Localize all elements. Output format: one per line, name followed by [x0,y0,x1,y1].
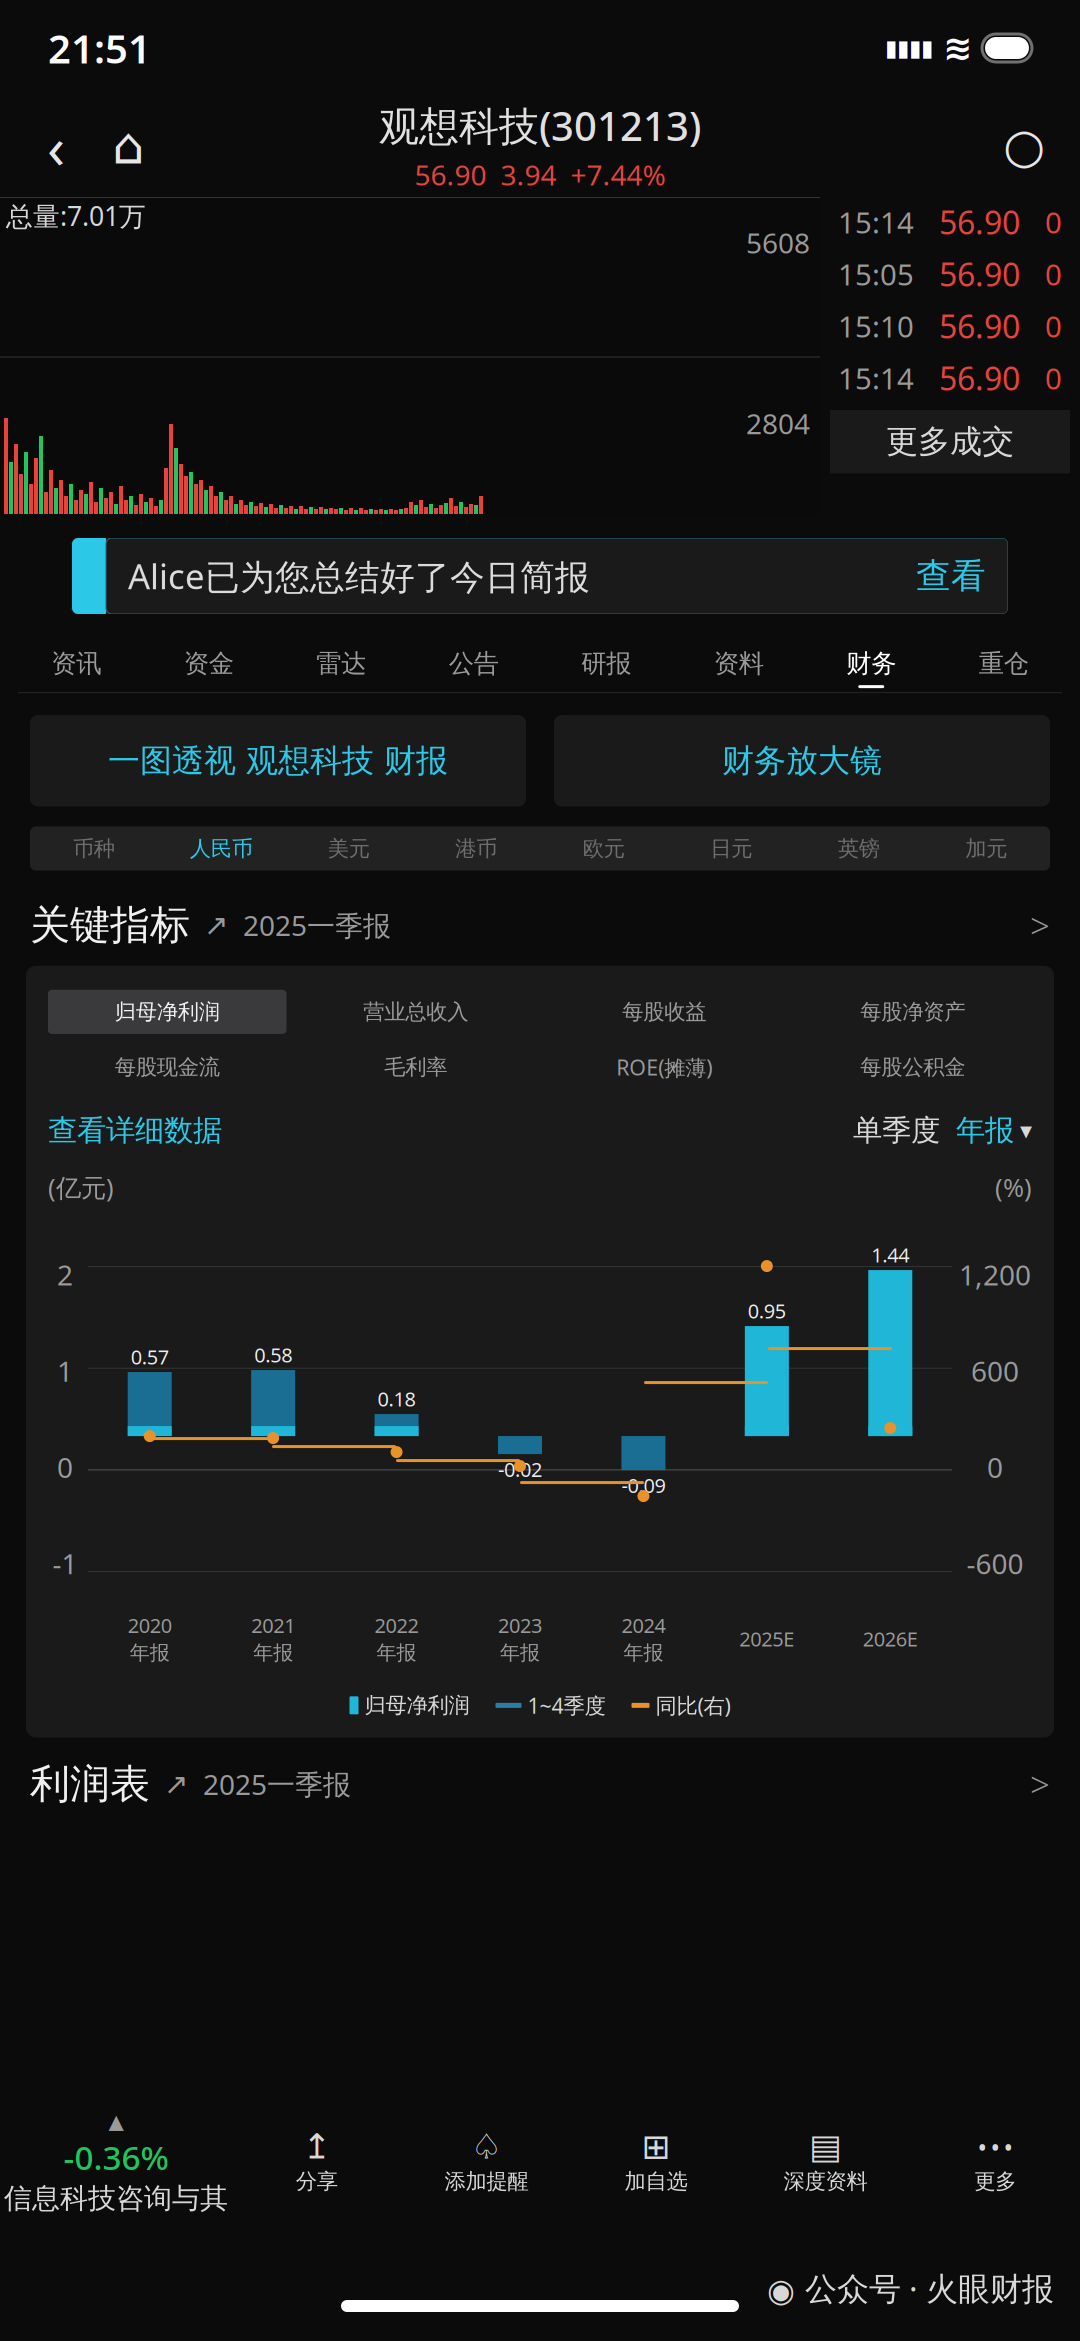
staticText: 0.57 [131,1343,169,1370]
staticText: 日元 [710,835,752,862]
staticText: 加自选 [624,2168,687,2195]
staticText: ⊞ [641,2127,670,2166]
staticText: 56.90 [939,357,1020,399]
staticText: 添加提醒 [444,2168,528,2195]
staticText: 15:10 [838,306,914,345]
button[interactable]: 更多成交 [830,410,1070,473]
button[interactable]: 单季度 [853,1104,940,1156]
staticText: 公告 [449,648,499,679]
staticText: 查看 [916,555,986,597]
staticText: (%) [995,1170,1032,1204]
staticText: 单季度 [853,1112,940,1148]
button[interactable]: 每股公积金 [793,1045,1032,1089]
staticText: ▮▮▮▮ [885,35,933,61]
button[interactable]: 财务 [805,644,937,692]
staticText: 年报 [623,1641,663,1665]
staticText: 欧元 [583,835,625,862]
button[interactable]: 每股净资产 [793,990,1032,1034]
staticText: 信息科技咨询与其 [4,2181,228,2216]
staticText: 15:14 [838,358,914,397]
staticText: 0 [57,1449,73,1486]
staticText: 查看详细数据 [48,1112,222,1148]
staticText: 5608 [746,224,810,261]
button[interactable]: Alice已为您总结好了今日简报 [0,538,1080,614]
button[interactable]: 资讯 [10,644,142,692]
staticText: 1~4季度 [527,1691,605,1719]
staticText: 1 [57,1352,73,1389]
button[interactable]: 一图透视 观想科技 财报 [30,715,526,806]
button[interactable]: ⊞ [571,2123,741,2203]
button[interactable]: ROE(摊薄) [545,1044,783,1090]
button[interactable]: ••• [910,2123,1080,2203]
staticText: ↥ [302,2127,331,2166]
button[interactable]: 每股收益 [545,990,783,1034]
button[interactable]: 日元 [667,826,795,871]
staticText: 利润表 [30,1759,150,1809]
button[interactable]: Home [92,110,164,182]
button[interactable]: 财务放大镜 [554,715,1050,806]
button[interactable]: Back [20,110,92,182]
button[interactable]: 雷达 [275,644,407,692]
staticText: ◉ 公众号 · 火眼财报 [767,2267,1054,2309]
staticText: 600 [971,1352,1019,1389]
button[interactable]: 币种 [30,826,157,871]
staticText: 年报 [377,1641,417,1665]
button[interactable]: 营业总收入 [296,990,535,1034]
staticText: 深度资料 [784,2168,868,2195]
staticText: 1.44 [871,1241,909,1268]
staticText: 同比(右) [655,1691,730,1719]
staticText: 2020 [128,1612,172,1639]
staticText: ♤ [471,2127,502,2166]
button[interactable]: 英镑 [795,826,922,871]
button[interactable]: Search [988,110,1060,182]
button[interactable]: 资金 [142,644,275,692]
staticText: ▾ [1020,1117,1032,1144]
staticText: 0.95 [748,1297,786,1324]
button[interactable]: 查看详细数据 [48,1104,222,1156]
staticText: 2025一季报 [243,907,391,944]
staticText: 0 [1045,254,1062,293]
staticText: 2 [57,1256,73,1293]
staticText: 年报 [956,1112,1014,1148]
button[interactable]: 重仓 [937,644,1070,692]
staticText: 人民币 [190,835,253,862]
staticText: 一图透视 观想科技 财报 [108,741,448,780]
button[interactable]: 美元 [285,826,412,871]
button[interactable]: 人民币 [157,826,285,871]
staticText: > [1030,1761,1050,1807]
staticText: 2026E [863,1625,918,1652]
button[interactable]: 公告 [407,644,540,692]
staticText: ↗ [164,1767,189,1801]
button[interactable]: 利润表 [0,1743,1080,1825]
staticText: 英镑 [838,835,880,862]
staticText: 2023 [498,1612,542,1639]
button[interactable]: 毛利率 [296,1045,535,1089]
staticText: 总量:7.01万 [6,198,146,233]
button[interactable]: ♤ [402,2123,571,2203]
staticText: ▤ [809,2127,842,2166]
staticText: 0.58 [254,1341,292,1368]
button[interactable]: ↥ [232,2123,402,2203]
staticText: (亿元) [48,1170,114,1204]
button[interactable]: 欧元 [540,826,667,871]
staticText: 重仓 [979,648,1029,679]
button[interactable]: 研报 [540,644,672,692]
button[interactable]: ▤ [741,2123,910,2203]
staticText: 2025一季报 [203,1765,351,1803]
staticText: 2022 [375,1612,419,1639]
staticText: 港币 [455,835,497,862]
button[interactable]: 资料 [672,644,805,692]
staticText: 每股现金流 [115,1054,220,1080]
staticText: 财务放大镜 [722,741,882,780]
button[interactable]: 归母净利润 [48,990,286,1034]
button[interactable]: 加元 [922,826,1050,871]
staticText: 加元 [965,835,1007,862]
staticText: 研报 [581,648,631,679]
button[interactable]: 每股现金流 [48,1045,286,1089]
staticText: -0.09 [621,1472,665,1499]
staticText: -1 [52,1545,77,1582]
button[interactable]: 港币 [412,826,540,871]
button[interactable]: 关键指标 [0,885,1080,966]
staticText: 币种 [73,835,115,862]
button[interactable]: 年报 [940,1104,1032,1156]
